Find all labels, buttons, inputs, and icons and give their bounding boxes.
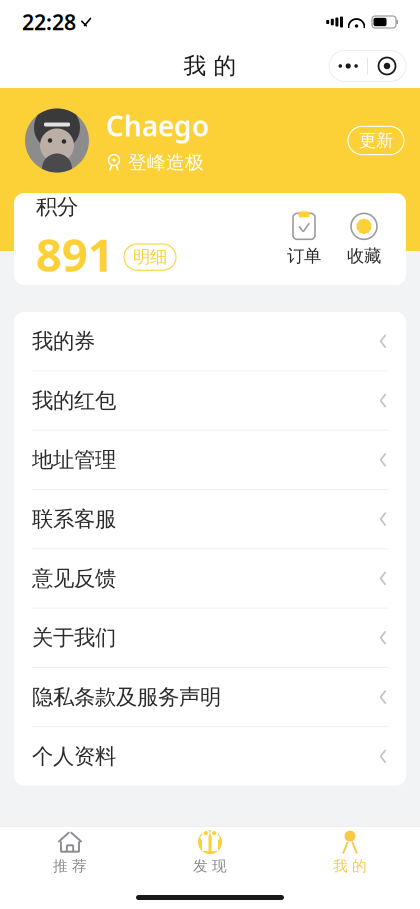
button[interactable]: 地址管理 <box>14 431 406 490</box>
staticText: 我的红包 <box>32 387 116 414</box>
staticText: 推 荐 <box>53 857 87 875</box>
staticText: 我 的 <box>183 52 236 80</box>
button[interactable]: 个人资料 <box>14 727 406 786</box>
staticText: 登峰造极 <box>128 151 204 174</box>
button[interactable]: 我 的 <box>280 824 420 879</box>
staticText: 发 现 <box>193 857 227 875</box>
staticText: 联系客服 <box>32 506 116 532</box>
staticText: 明细 <box>133 246 167 268</box>
staticText: 22:28 <box>22 8 76 36</box>
staticText: 意见反馈 <box>32 565 116 591</box>
staticText: 我的券 <box>32 328 95 354</box>
button[interactable]: 推 荐 <box>0 824 140 879</box>
staticText: 积分 <box>36 194 78 220</box>
button[interactable]: 我的券 <box>14 312 406 371</box>
button[interactable]: 明细 <box>124 244 176 270</box>
staticText: 关于我们 <box>32 625 116 651</box>
staticText: Chaego <box>106 107 209 144</box>
button[interactable]: 收藏 <box>334 211 394 267</box>
staticText: 订单 <box>287 245 321 267</box>
staticText: 隐私条款及服务声明 <box>32 684 221 710</box>
button[interactable]: 发 现 <box>140 824 280 879</box>
button[interactable]: 关于我们 <box>14 608 406 668</box>
button[interactable]: 订单 <box>274 211 334 267</box>
button[interactable]: Close <box>368 50 406 81</box>
button[interactable]: 联系客服 <box>14 490 406 549</box>
button[interactable]: 意见反馈 <box>14 549 406 608</box>
staticText: 更新 <box>359 130 393 151</box>
button[interactable]: 更新 <box>348 126 404 155</box>
button[interactable]: 隐私条款及服务声明 <box>14 668 406 727</box>
staticText: 个人资料 <box>32 743 116 769</box>
staticText: 收藏 <box>347 245 381 267</box>
staticText: 891 <box>36 224 114 284</box>
staticText: 地址管理 <box>32 447 116 473</box>
button[interactable]: 我的红包 <box>14 371 406 431</box>
staticText: 我 的 <box>333 857 367 875</box>
button[interactable]: More <box>329 50 367 81</box>
